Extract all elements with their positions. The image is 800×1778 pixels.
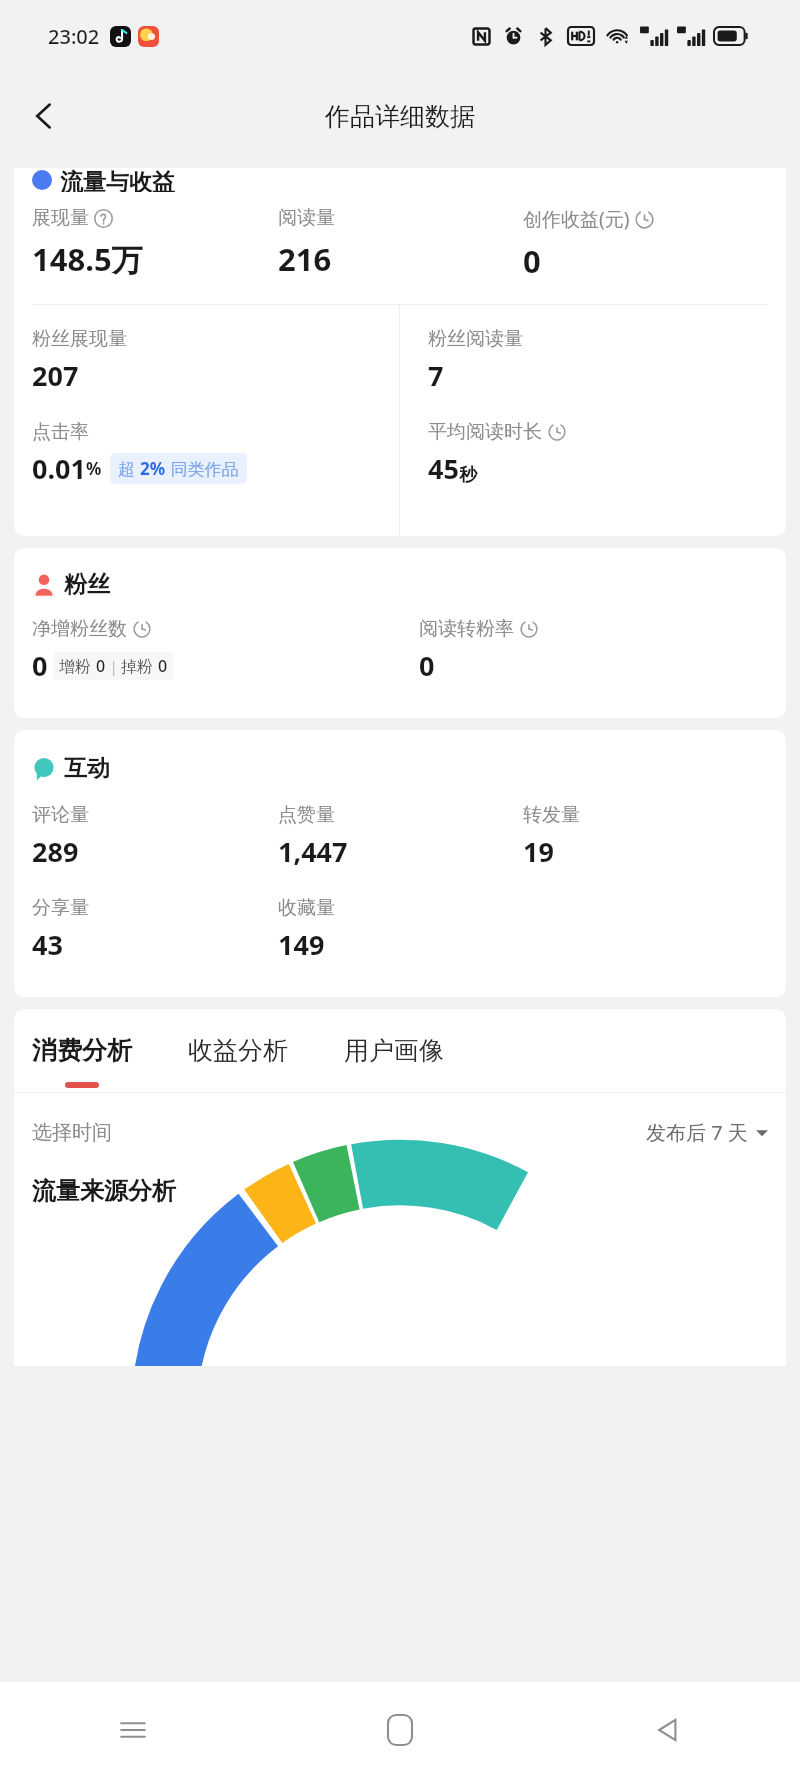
staticText: 0: [96, 655, 106, 677]
staticText: 作品详细数据: [325, 101, 475, 132]
staticText: 0: [32, 647, 48, 684]
button[interactable]: 选择时间: [32, 1119, 768, 1146]
staticText: 207: [32, 357, 79, 394]
button[interactable]: 用户画像: [344, 1035, 444, 1092]
staticText: 创作收益(元): [523, 206, 630, 232]
staticText: |: [106, 657, 121, 676]
staticText: 流量与收益: [60, 168, 175, 192]
staticText: 45: [428, 450, 459, 487]
staticText: 19: [523, 833, 554, 870]
staticText: 289: [32, 833, 79, 870]
staticText: 同类作品: [166, 457, 239, 480]
staticText: 净增粉丝数: [32, 617, 127, 641]
staticText: 分享量: [32, 896, 89, 920]
staticText: 0: [419, 647, 435, 684]
staticText: 增粉: [59, 655, 96, 677]
staticText: 阅读转粉率: [419, 617, 514, 641]
staticText: %: [86, 457, 102, 480]
staticText: 收益分析: [188, 1035, 288, 1066]
button[interactable]: 返回: [16, 88, 72, 144]
button[interactable]: 最近任务: [0, 1682, 266, 1778]
staticText: 流量来源分析: [32, 1176, 176, 1206]
staticText: 1,447: [278, 833, 348, 870]
button[interactable]: 主页: [266, 1682, 533, 1778]
staticText: 展现量: [32, 206, 89, 230]
staticText: 7: [428, 357, 444, 394]
staticText: 粉丝: [64, 570, 110, 599]
staticText: 阅读量: [278, 206, 335, 230]
staticText: 148.5万: [32, 238, 143, 280]
staticText: 216: [278, 238, 332, 280]
staticText: 0: [523, 240, 541, 282]
staticText: 转发量: [523, 803, 580, 827]
button[interactable]: 收益分析: [188, 1035, 288, 1092]
staticText: 0.01: [32, 450, 86, 487]
staticText: 掉粉: [121, 655, 158, 677]
staticText: 发布后 7 天: [646, 1119, 748, 1146]
staticText: 用户画像: [344, 1035, 444, 1066]
staticText: 收藏量: [278, 896, 335, 920]
button[interactable]: 返回: [533, 1682, 800, 1778]
staticText: 秒: [459, 464, 477, 487]
staticText: 平均阅读时长: [428, 420, 542, 444]
staticText: 互动: [64, 754, 110, 783]
staticText: 点击率: [32, 420, 89, 444]
staticText: 149: [278, 926, 325, 963]
staticText: 粉丝展现量: [32, 327, 127, 351]
staticText: 粉丝阅读量: [428, 327, 523, 351]
staticText: 超: [118, 457, 140, 480]
staticText: 2%: [140, 457, 166, 480]
staticText: 消费分析: [32, 1035, 132, 1066]
staticText: 23:02: [48, 23, 100, 50]
staticText: 评论量: [32, 803, 89, 827]
button[interactable]: 消费分析: [32, 1035, 132, 1092]
staticText: 点赞量: [278, 803, 335, 827]
staticText: 选择时间: [32, 1120, 112, 1145]
staticText: 0: [158, 655, 168, 677]
staticText: 43: [32, 926, 63, 963]
